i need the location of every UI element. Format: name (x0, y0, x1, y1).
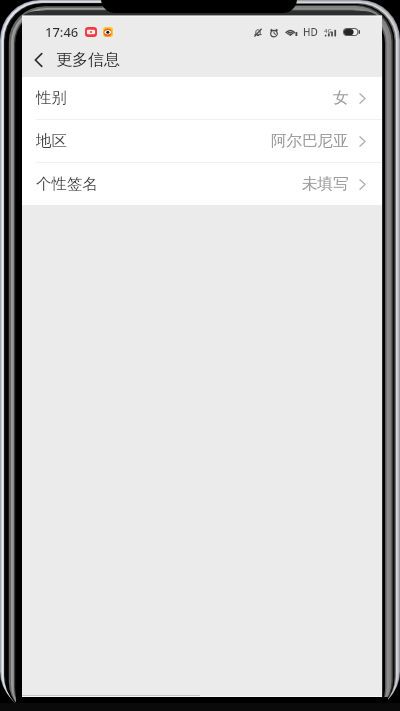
staticText: 4G (324, 27, 332, 35)
staticText: 未填写 (302, 174, 349, 194)
button[interactable]: Back (22, 44, 54, 75)
button[interactable]: 地区 (22, 120, 382, 163)
staticText: 地区 (36, 131, 67, 151)
button[interactable]: 性别 (22, 77, 382, 120)
staticText: 女 (333, 88, 349, 108)
staticText: 个性签名 (36, 174, 98, 194)
staticText: 更多信息 (56, 50, 120, 70)
button[interactable]: 个性签名 (22, 163, 382, 205)
staticText: 性别 (36, 88, 67, 108)
staticText: HD (303, 25, 318, 39)
staticText: 阿尔巴尼亚 (271, 131, 349, 151)
staticText: 17:46 (45, 23, 79, 41)
